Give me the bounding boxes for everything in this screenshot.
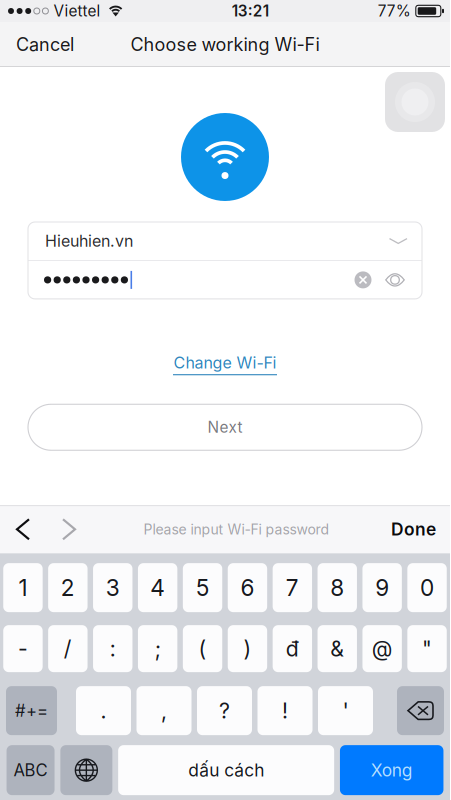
staticText: Next: [207, 418, 242, 437]
button[interactable]: ': [318, 686, 373, 735]
button[interactable]: 3: [93, 563, 132, 612]
staticText: #+=: [15, 701, 48, 721]
staticText: ,: [161, 698, 167, 723]
staticText: ": [422, 636, 432, 661]
staticText: 5: [196, 574, 209, 601]
button[interactable]: Show password: [382, 267, 408, 293]
button[interactable]: @: [362, 625, 402, 672]
staticText: ;: [155, 636, 161, 661]
button[interactable]: dấu cách: [118, 745, 334, 795]
button[interactable]: 6: [228, 563, 267, 612]
button[interactable]: ;: [138, 625, 177, 672]
staticText: dấu cách: [188, 760, 264, 781]
button[interactable]: Cancel: [0, 22, 90, 67]
staticText: :: [110, 636, 116, 661]
button[interactable]: AssistiveTouch: [385, 67, 450, 132]
staticText: -: [18, 636, 28, 661]
button[interactable]: /: [48, 625, 88, 672]
staticText: 77%: [378, 2, 411, 20]
staticText: 6: [240, 574, 254, 601]
button[interactable]: Done: [381, 506, 450, 553]
button[interactable]: 5: [183, 563, 222, 612]
button[interactable]: !: [257, 686, 312, 735]
staticText: ): [243, 636, 251, 661]
staticText: ABC: [14, 760, 48, 780]
button[interactable]: ABC: [7, 745, 55, 795]
button[interactable]: (: [183, 625, 222, 672]
staticText: Done: [391, 519, 436, 540]
button[interactable]: 7: [273, 563, 312, 612]
button[interactable]: ): [228, 625, 267, 672]
button[interactable]: 9: [362, 563, 402, 612]
button[interactable]: #+=: [6, 686, 57, 735]
button[interactable]: 0: [407, 563, 447, 612]
button[interactable]: :: [93, 625, 132, 672]
button[interactable]: -: [3, 625, 43, 672]
button[interactable]: &: [318, 625, 357, 672]
staticText: Viettel: [53, 2, 100, 20]
staticText: Xong: [371, 760, 413, 781]
staticText: /: [64, 636, 72, 661]
staticText: 13:21: [232, 2, 269, 20]
button[interactable]: Next: [28, 404, 422, 450]
staticText: (: [199, 636, 207, 661]
staticText: 7: [286, 574, 299, 601]
staticText: ': [342, 698, 348, 723]
button[interactable]: .: [76, 686, 131, 735]
button[interactable]: Hieuhien.vn: [28, 222, 422, 260]
staticText: 2: [61, 574, 75, 601]
staticText: @: [372, 636, 393, 661]
button[interactable]: Xong: [340, 745, 443, 795]
button[interactable]: Clear password: [350, 267, 376, 293]
button[interactable]: 1: [3, 563, 43, 612]
staticText: Hieuhien.vn: [45, 231, 133, 251]
button[interactable]: ?: [197, 686, 252, 735]
staticText: Cancel: [16, 34, 74, 55]
button[interactable]: Next field: [46, 505, 92, 553]
button[interactable]: Previous field: [0, 505, 46, 553]
staticText: Please input Wi-Fi password: [143, 521, 329, 538]
button[interactable]: Change Wi-Fi: [167, 353, 282, 375]
staticText: 8: [330, 574, 344, 601]
button[interactable]: 8: [318, 563, 357, 612]
staticText: Change Wi-Fi: [173, 353, 276, 372]
staticText: 3: [106, 574, 120, 601]
staticText: đ: [286, 636, 299, 661]
staticText: 9: [375, 574, 389, 601]
staticText: 1: [18, 574, 27, 601]
staticText: !: [282, 698, 288, 723]
staticText: &: [330, 636, 344, 661]
staticText: .: [100, 698, 106, 723]
button[interactable]: ": [407, 625, 447, 672]
staticText: Choose working Wi-Fi: [130, 34, 319, 55]
staticText: 0: [420, 574, 434, 601]
button[interactable]: Change keyboard: [60, 745, 112, 795]
button[interactable]: 2: [48, 563, 88, 612]
button[interactable]: 4: [138, 563, 177, 612]
staticText: ?: [219, 698, 230, 723]
button[interactable]: Delete: [397, 686, 444, 735]
button[interactable]: ,: [136, 686, 191, 735]
button[interactable]: đ: [273, 625, 312, 672]
staticText: 4: [150, 574, 165, 601]
